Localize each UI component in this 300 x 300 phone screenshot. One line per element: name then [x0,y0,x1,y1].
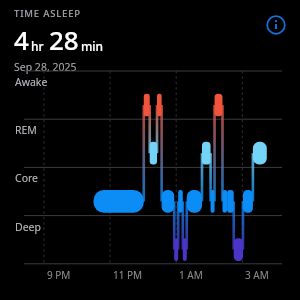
staticText: Deep [15,220,41,234]
staticText: Awake [15,75,48,89]
staticText: 3 AM [245,268,269,282]
staticText: REM [15,123,37,137]
staticText: 9 PM [47,268,71,282]
staticText: Core [15,171,39,185]
staticText: 11 PM [113,268,143,282]
staticText: 28 [49,22,79,57]
button[interactable]: About sleep stages [263,12,289,38]
staticText: 4 [14,22,29,57]
staticText: 1 AM [179,268,203,282]
staticText: Sep 28, 2025 [14,60,77,74]
staticText: hr [31,38,44,54]
staticText: TIME ASLEEP [14,7,81,20]
staticText: min [81,38,104,54]
